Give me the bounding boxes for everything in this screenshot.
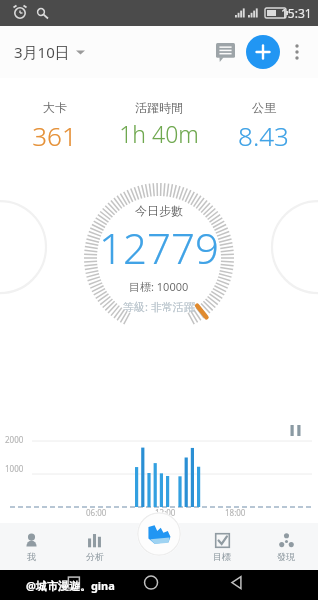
staticText: 我 — [27, 551, 36, 562]
staticText: 目標: 10000 — [129, 279, 189, 294]
button[interactable]: Pause — [282, 417, 308, 443]
staticText: 06:00 — [86, 507, 107, 518]
button[interactable]: More options — [280, 35, 314, 69]
staticText: 12:00 — [155, 507, 176, 518]
staticText: 1000 — [5, 463, 24, 474]
button[interactable]: 大卡 — [6, 100, 103, 153]
staticText: 3月10日 — [14, 42, 70, 62]
staticText: 2000 — [5, 434, 24, 445]
button[interactable]: Messages — [206, 33, 244, 71]
staticText: 8.43 — [238, 118, 289, 153]
button[interactable]: 今日步數 — [99, 203, 219, 314]
staticText: 目標 — [213, 551, 231, 562]
button[interactable]: 目標 — [190, 523, 254, 570]
staticText: 今日步數 — [135, 203, 183, 218]
button[interactable]: 發現 — [254, 523, 318, 570]
button[interactable]: 活躍時間 — [103, 100, 215, 149]
button[interactable]: 我 — [0, 523, 63, 570]
staticText: 活躍時間 — [135, 100, 183, 115]
button[interactable]: 公里 — [215, 100, 312, 153]
staticText: @城市漫遊。gina — [26, 578, 115, 593]
staticText: 18:00 — [225, 507, 246, 518]
staticText: 公里 — [252, 100, 276, 115]
button[interactable]: 3月10日 — [12, 36, 87, 68]
staticText: 等級: 非常活躍 — [123, 299, 195, 314]
staticText: 大卡 — [43, 100, 67, 115]
staticText: 分析 — [86, 551, 104, 562]
staticText: 361 — [32, 118, 77, 153]
staticText: 12779 — [99, 219, 219, 276]
button[interactable]: 分析 — [63, 523, 126, 570]
button[interactable]: Start activity — [137, 512, 181, 556]
button[interactable]: Add — [246, 35, 280, 69]
staticText: 1h 40m — [119, 118, 199, 149]
staticText: 發現 — [277, 551, 295, 562]
staticText: 15:31 — [281, 5, 312, 21]
